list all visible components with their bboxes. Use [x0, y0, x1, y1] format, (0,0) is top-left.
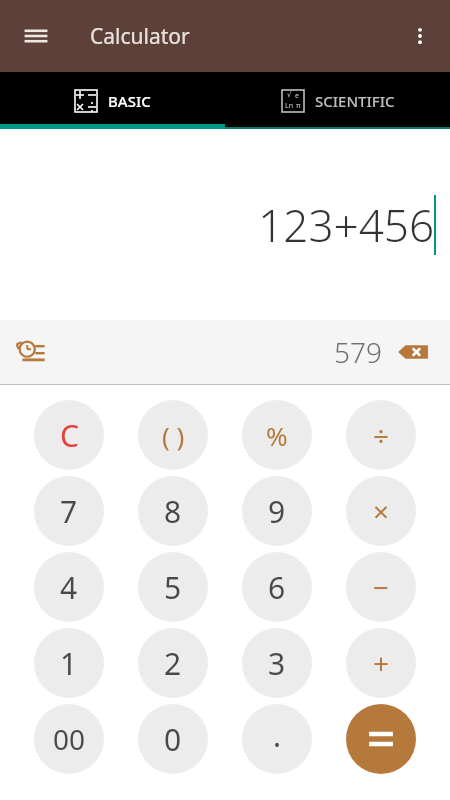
button[interactable]: More options [398, 14, 442, 58]
staticText: 3 [268, 643, 286, 684]
button[interactable]: C [34, 400, 104, 470]
button[interactable]: ( ) [138, 400, 208, 470]
staticText: BASIC [108, 91, 151, 111]
staticText: 6 [268, 567, 286, 608]
staticText: − [373, 568, 390, 606]
button[interactable]: ÷ [346, 400, 416, 470]
staticText: ÷ [373, 416, 390, 454]
staticText: 123+456 [258, 195, 434, 255]
staticText: + [373, 644, 390, 682]
staticText: e [295, 91, 299, 101]
staticText: π [296, 101, 301, 111]
staticText: % [266, 418, 288, 453]
button[interactable] [346, 704, 416, 774]
staticText: C [60, 415, 79, 456]
staticText: 7 [60, 491, 78, 532]
button[interactable]: 6 [242, 552, 312, 622]
button[interactable]: 00 [34, 704, 104, 774]
staticText: 579 [334, 333, 382, 371]
button[interactable]: 0 [138, 704, 208, 774]
button[interactable]: . [242, 704, 312, 774]
button[interactable]: 3 [242, 628, 312, 698]
button[interactable]: Backspace [390, 329, 436, 375]
staticText: 00 [53, 720, 86, 758]
button[interactable]: 7 [34, 476, 104, 546]
staticText: 1 [60, 643, 78, 684]
staticText: 5 [164, 567, 182, 608]
button[interactable]: 9 [242, 476, 312, 546]
button[interactable]: 4 [34, 552, 104, 622]
staticText: Ln [285, 101, 293, 111]
button[interactable]: 2 [138, 628, 208, 698]
staticText: Calculator [90, 22, 190, 51]
button[interactable]: √ [225, 72, 450, 129]
staticText: 2 [164, 643, 182, 684]
staticText: 4 [60, 567, 78, 608]
button[interactable]: History [10, 330, 54, 374]
button[interactable]: 5 [138, 552, 208, 622]
button[interactable]: − [346, 552, 416, 622]
button[interactable]: 8 [138, 476, 208, 546]
staticText: 0 [164, 719, 182, 760]
staticText: . [273, 715, 282, 756]
staticText: √ [287, 91, 292, 99]
button[interactable]: BASIC [0, 72, 225, 129]
button[interactable]: Open navigation menu [14, 14, 58, 58]
button[interactable]: + [346, 628, 416, 698]
button[interactable]: × [346, 476, 416, 546]
staticText: × [373, 492, 390, 530]
staticText: ( ) [162, 418, 185, 453]
staticText: SCIENTIFIC [315, 91, 395, 111]
button[interactable]: % [242, 400, 312, 470]
staticText: 9 [268, 491, 286, 532]
staticText: 8 [164, 491, 182, 532]
button[interactable]: 1 [34, 628, 104, 698]
